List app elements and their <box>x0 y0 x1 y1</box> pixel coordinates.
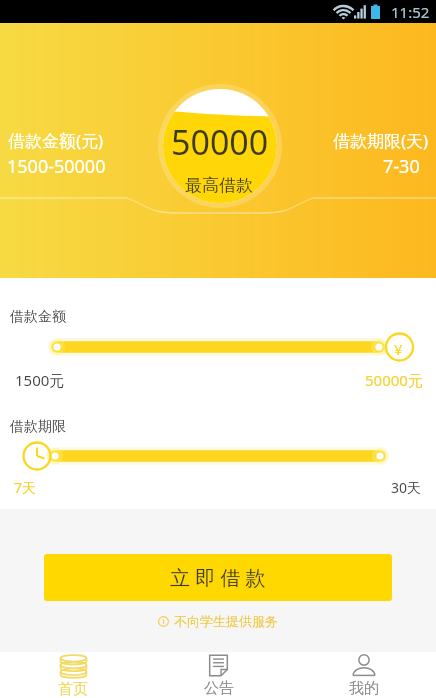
staticText: 7-30 <box>383 154 420 179</box>
staticText: 50000 <box>171 119 269 165</box>
staticText: 借款期限 <box>10 418 66 436</box>
staticText: 50000元 <box>365 370 423 390</box>
staticText: 立 即 借 款 <box>170 564 266 591</box>
button[interactable]: 首页 <box>0 652 146 698</box>
button[interactable]: 我的 <box>291 652 436 698</box>
button[interactable]: 立 即 借 款 <box>44 554 392 601</box>
staticText: 7天 <box>14 478 37 497</box>
staticText: 借款期限(天) <box>333 129 429 152</box>
staticText: ¥ <box>394 339 403 359</box>
staticText: 借款金额 <box>10 308 66 326</box>
staticText: 首页 <box>58 680 88 698</box>
staticText: 最高借款 <box>185 175 253 196</box>
button[interactable]: 公告 <box>146 652 291 698</box>
staticText: 1500元 <box>15 370 65 390</box>
staticText: 30天 <box>391 478 422 497</box>
staticText: 不向学生提供服务 <box>174 613 278 629</box>
staticText: 11:52 <box>391 2 430 22</box>
staticText: 公告 <box>204 679 234 698</box>
staticText: 1500-50000 <box>7 154 106 179</box>
staticText: 我的 <box>349 679 379 698</box>
staticText: 借款金额(元) <box>8 129 104 152</box>
